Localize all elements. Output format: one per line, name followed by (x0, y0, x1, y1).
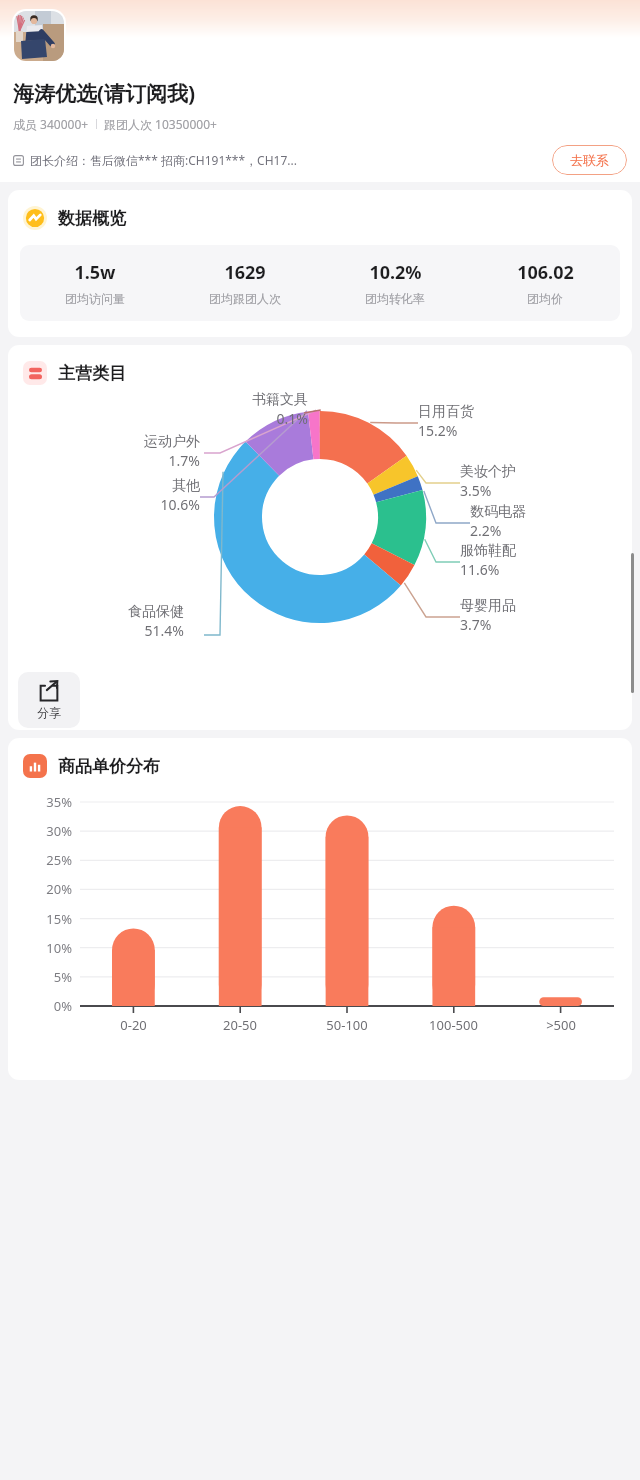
staticText: 数码电器 (470, 503, 610, 521)
staticText: 25% (12, 851, 72, 869)
staticText: 20% (12, 880, 72, 898)
button[interactable] (14, 11, 64, 61)
staticText: 1.5w (74, 260, 116, 285)
staticText: 分享 (37, 705, 61, 720)
staticText: 成员 340000+ (13, 116, 89, 132)
staticText: 服饰鞋配 (460, 542, 600, 560)
staticText: 1.7% (80, 451, 200, 470)
staticText: 30% (12, 822, 72, 840)
staticText: 0.1% (188, 409, 308, 428)
staticText: 10.6% (80, 495, 200, 514)
staticText: 20-50 (223, 1016, 257, 1034)
staticText: 海涛优选(请订阅我) (13, 79, 196, 108)
staticText: 35% (12, 793, 72, 811)
staticText: 3.7% (460, 615, 600, 634)
staticText: 团均转化率 (365, 291, 425, 306)
staticText: 团均价 (527, 291, 563, 306)
staticText: 10% (12, 939, 72, 957)
staticText: 2.2% (470, 521, 610, 540)
staticText: 团均访问量 (65, 291, 125, 306)
staticText: 食品保健 (64, 603, 184, 621)
staticText: 运动户外 (80, 433, 200, 451)
staticText: 去联系 (570, 152, 609, 168)
staticText: 15.2% (418, 421, 558, 440)
staticText: 书籍文具 (188, 391, 308, 409)
staticText: 0% (12, 997, 72, 1015)
staticText: 100-500 (429, 1016, 478, 1034)
staticText: 15% (12, 910, 72, 928)
staticText: >500 (546, 1016, 576, 1034)
staticText: 日用百货 (418, 403, 558, 421)
staticText: 其他 (80, 477, 200, 495)
staticText: 11.6% (460, 560, 600, 579)
staticText: 5% (12, 968, 72, 986)
staticText: 106.02 (517, 260, 574, 285)
staticText: 母婴用品 (460, 597, 600, 615)
staticText: 3.5% (460, 481, 600, 500)
staticText: 0-20 (120, 1016, 147, 1034)
staticText: 10.2% (369, 260, 422, 285)
staticText: 主营类目 (58, 363, 126, 384)
staticText: 商品单价分布 (58, 756, 160, 777)
staticText: 团长介绍：售后微信*** 招商:CH191***，CH17... (30, 152, 297, 168)
staticText: 美妆个护 (460, 463, 600, 481)
staticText: 团均跟团人次 (209, 291, 281, 306)
staticText: 数据概览 (58, 208, 126, 229)
staticText: 1629 (224, 260, 266, 285)
button[interactable]: 去联系 (552, 145, 627, 175)
staticText: 51.4% (64, 621, 184, 640)
staticText: 50-100 (326, 1016, 368, 1034)
staticText: 跟团人次 10350000+ (104, 116, 217, 132)
button[interactable]: 分享 (18, 672, 80, 728)
